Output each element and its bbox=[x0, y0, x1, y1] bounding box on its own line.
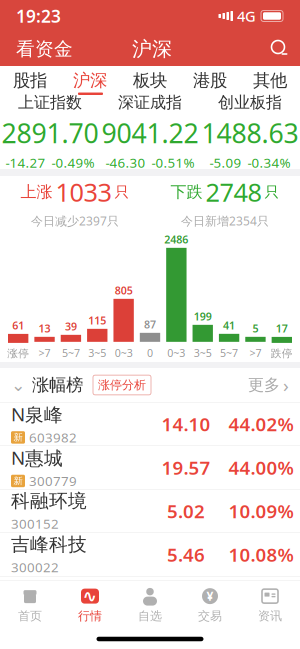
button[interactable]: 自选 bbox=[120, 581, 180, 629]
staticText: 吉峰科技 bbox=[11, 533, 87, 556]
staticText: ∿ bbox=[82, 586, 97, 606]
staticText: 10.09% bbox=[228, 499, 293, 523]
staticText: 1488.63 bbox=[201, 115, 298, 151]
staticText: ¥ bbox=[206, 588, 213, 604]
staticText: 板块 bbox=[133, 70, 167, 91]
staticText: 2748 bbox=[205, 175, 261, 209]
staticText: 9041.22 bbox=[101, 115, 198, 151]
staticText: 行情 bbox=[78, 609, 102, 623]
staticText: 4G bbox=[237, 6, 256, 26]
button[interactable]: 港股 bbox=[180, 66, 240, 95]
staticText: 300152 bbox=[11, 515, 59, 532]
staticText: 只 bbox=[114, 183, 129, 201]
button[interactable]: 上证指数 bbox=[0, 86, 100, 178]
staticText: 下跌 bbox=[170, 182, 202, 202]
staticText: 5~7 bbox=[220, 346, 238, 360]
staticText: 今日新增2354只 bbox=[181, 213, 269, 229]
staticText: 创业板指 bbox=[218, 93, 282, 112]
button[interactable]: 搜索 bbox=[260, 32, 300, 66]
staticText: 新 bbox=[13, 432, 22, 443]
button[interactable]: 科融环境 bbox=[0, 489, 300, 533]
staticText: 44.00% bbox=[228, 455, 293, 480]
staticText: 87 bbox=[144, 317, 156, 331]
staticText: 39 bbox=[65, 319, 77, 333]
staticText: 41 bbox=[223, 318, 235, 332]
staticText: 涨停 bbox=[7, 347, 29, 360]
staticText: 199 bbox=[194, 309, 212, 323]
staticText: 0 bbox=[147, 346, 153, 360]
staticText: 5~7 bbox=[62, 346, 80, 360]
staticText: 沪深 bbox=[132, 37, 172, 61]
staticText: 涨停分析 bbox=[98, 378, 146, 392]
staticText: -46.30 bbox=[105, 154, 145, 171]
staticText: 更多 bbox=[248, 375, 280, 395]
staticText: 19.57 bbox=[161, 455, 210, 480]
staticText: N泉峰 bbox=[11, 402, 63, 427]
button[interactable]: 其他 bbox=[240, 66, 300, 95]
staticText: 44.02% bbox=[228, 412, 293, 436]
staticText: 其他 bbox=[253, 70, 287, 91]
button[interactable]: N泉峰 bbox=[0, 402, 300, 446]
staticText: 涨幅榜 bbox=[32, 374, 83, 396]
staticText: 3~5 bbox=[194, 346, 212, 360]
staticText: 300022 bbox=[11, 558, 59, 576]
staticText: 14.10 bbox=[161, 412, 210, 436]
staticText: 资讯 bbox=[258, 609, 282, 623]
staticText: 17 bbox=[276, 321, 288, 335]
staticText: 只 bbox=[264, 183, 279, 201]
staticText: >7 bbox=[38, 346, 50, 360]
staticText: -0.51% bbox=[151, 154, 194, 171]
button[interactable]: 股指 bbox=[0, 66, 60, 95]
staticText: 0~3 bbox=[115, 346, 133, 360]
staticText: 看资金 bbox=[16, 37, 73, 60]
button[interactable]: 吉峰科技 bbox=[0, 533, 300, 576]
staticText: 13 bbox=[38, 321, 50, 335]
staticText: 自选 bbox=[138, 609, 162, 623]
staticText: >7 bbox=[249, 346, 261, 360]
button[interactable]: 首页 bbox=[0, 581, 60, 629]
staticText: 115 bbox=[88, 313, 106, 327]
staticText: 19:23 bbox=[16, 4, 61, 27]
staticText: 61 bbox=[12, 318, 24, 332]
staticText: 科融环境 bbox=[11, 490, 87, 513]
staticText: 5.46 bbox=[167, 542, 205, 567]
staticText: 603982 bbox=[29, 429, 77, 446]
button[interactable]: ⌄ bbox=[0, 368, 83, 402]
button[interactable]: 深证成指 bbox=[100, 86, 200, 178]
staticText: 10.08% bbox=[228, 542, 293, 567]
button[interactable]: N惠城 bbox=[0, 446, 300, 489]
staticText: 300779 bbox=[29, 472, 77, 490]
staticText: 深证成指 bbox=[118, 93, 182, 112]
staticText: 新 bbox=[13, 475, 22, 487]
staticText: 首页 bbox=[18, 609, 42, 623]
button[interactable]: 涨停分析 bbox=[83, 375, 151, 395]
staticText: 2891.70 bbox=[1, 115, 98, 151]
button[interactable]: 更多 bbox=[248, 368, 300, 402]
staticText: 股指 bbox=[13, 70, 47, 91]
button[interactable]: 资讯 bbox=[240, 581, 300, 629]
staticText: 上证指数 bbox=[18, 93, 82, 112]
button[interactable]: ¥ bbox=[180, 581, 240, 629]
staticText: -0.34% bbox=[247, 154, 290, 171]
staticText: 805 bbox=[115, 283, 133, 297]
button[interactable]: 创业板指 bbox=[200, 86, 300, 178]
staticText: › bbox=[283, 373, 289, 397]
staticText: 0~3 bbox=[167, 346, 185, 360]
button[interactable]: 沪深 bbox=[60, 66, 120, 95]
staticText: 3~5 bbox=[88, 346, 106, 360]
staticText: 今日减少2397只 bbox=[31, 213, 119, 229]
staticText: 5 bbox=[252, 321, 258, 335]
button[interactable]: 看资金 bbox=[0, 32, 89, 66]
staticText: -5.09 bbox=[209, 154, 241, 171]
staticText: 2486 bbox=[164, 232, 188, 246]
staticText: 沪深 bbox=[73, 70, 107, 91]
staticText: 5.02 bbox=[167, 499, 205, 523]
staticText: -0.49% bbox=[51, 154, 94, 171]
staticText: 上涨 bbox=[20, 182, 52, 202]
staticText: ⌄ bbox=[11, 375, 26, 395]
button[interactable]: ∿ bbox=[60, 581, 120, 629]
button[interactable]: 板块 bbox=[120, 66, 180, 95]
staticText: N惠城 bbox=[11, 445, 63, 470]
staticText: 跌停 bbox=[271, 347, 293, 360]
staticText: -14.27 bbox=[5, 154, 45, 171]
